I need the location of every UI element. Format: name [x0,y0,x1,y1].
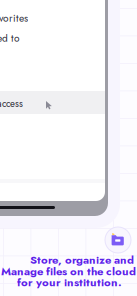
staticText: Shared to [0,31,20,45]
staticText: for your institution. [17,274,122,290]
staticText: Manage files on the cloud [1,263,136,279]
staticText: and access [0,97,23,110]
staticText: Store, organize and [30,251,134,268]
staticText: Favorites [0,11,28,25]
